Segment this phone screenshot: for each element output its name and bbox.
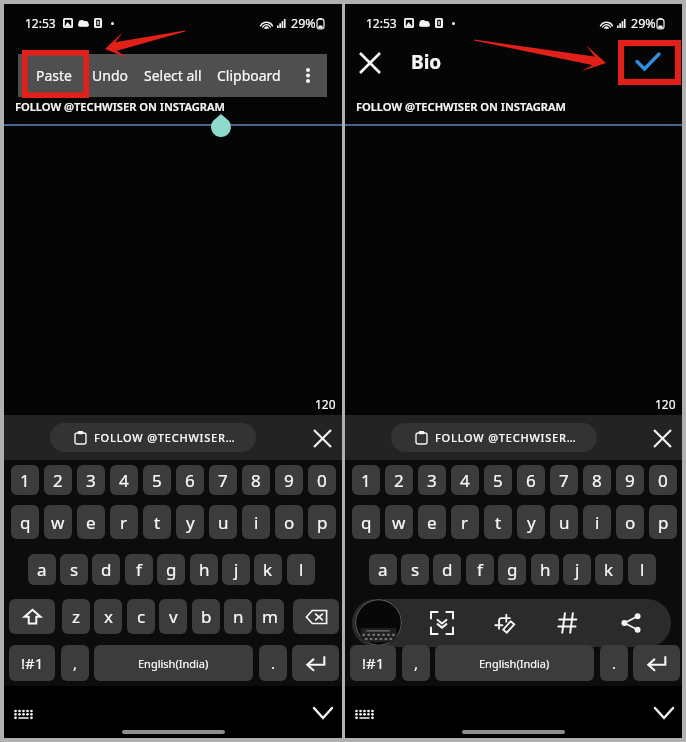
button[interactable]: d	[433, 554, 461, 585]
button[interactable]: 5	[484, 465, 512, 495]
button[interactable]: s	[60, 554, 88, 585]
button[interactable]: n	[224, 599, 252, 634]
button[interactable]: .	[259, 645, 287, 681]
button[interactable]: 5	[143, 465, 171, 495]
button[interactable]: l	[287, 554, 315, 585]
staticText: b	[201, 605, 212, 628]
button[interactable]: z	[62, 599, 90, 634]
button[interactable]: Paste	[18, 54, 89, 97]
button[interactable]: 1	[352, 465, 380, 495]
button[interactable]: o	[616, 505, 644, 539]
button[interactable]: s	[401, 554, 429, 585]
button[interactable]: 6	[176, 465, 204, 495]
button[interactable]: y	[517, 505, 545, 539]
button[interactable]: v	[159, 599, 187, 634]
button[interactable]: u	[550, 505, 578, 539]
button[interactable]: t	[484, 505, 512, 539]
button[interactable]: x	[94, 599, 122, 634]
button[interactable]: 7	[550, 465, 578, 495]
button[interactable]: 6	[517, 465, 545, 495]
button[interactable]: h	[190, 554, 218, 585]
button[interactable]: k	[595, 554, 623, 585]
button[interactable]: b	[192, 599, 220, 634]
button[interactable]: Close	[352, 45, 388, 81]
button[interactable]: o	[275, 505, 303, 539]
button[interactable]: .	[600, 645, 628, 681]
button[interactable]: Shift	[9, 599, 55, 634]
button[interactable]: !#1	[350, 645, 396, 681]
button[interactable]: d	[92, 554, 120, 585]
button[interactable]: f	[466, 554, 494, 585]
staticText: !#1	[21, 653, 44, 673]
button[interactable]: Close suggestion	[307, 423, 337, 453]
staticText: l	[299, 558, 304, 581]
button[interactable]: 8	[583, 465, 611, 495]
button[interactable]: 4	[451, 465, 479, 495]
button[interactable]: Undo	[84, 54, 136, 97]
button[interactable]: e	[418, 505, 446, 539]
button[interactable]: q	[352, 505, 380, 539]
button[interactable]: l	[628, 554, 656, 585]
button[interactable]: 2	[385, 465, 413, 495]
button[interactable]: k	[254, 554, 282, 585]
button[interactable]: !#1	[9, 645, 55, 681]
button[interactable]: Hide keyboard	[648, 697, 680, 729]
button[interactable]: f	[125, 554, 153, 585]
button[interactable]: p	[649, 505, 677, 539]
button[interactable]: FOLLOW @TECHWISER…	[391, 423, 597, 452]
button[interactable]: 9	[616, 465, 644, 495]
button[interactable]: g	[157, 554, 185, 585]
button[interactable]: w	[44, 505, 72, 539]
button[interactable]: Recent sticker	[355, 599, 402, 646]
button[interactable]: Enter	[633, 645, 680, 681]
button[interactable]: 1	[11, 465, 39, 495]
button[interactable]: j	[222, 554, 250, 585]
button[interactable]: y	[176, 505, 204, 539]
button[interactable]: Clipboard	[213, 54, 285, 97]
button[interactable]: 3	[77, 465, 105, 495]
button[interactable]: i	[583, 505, 611, 539]
button[interactable]: e	[77, 505, 105, 539]
button[interactable]: FOLLOW @TECHWISER…	[50, 423, 256, 452]
button[interactable]: ,	[61, 645, 89, 681]
button[interactable]: Backspace	[293, 599, 339, 634]
button[interactable]: ,	[402, 645, 430, 681]
button[interactable]: 9	[275, 465, 303, 495]
button[interactable]: w	[385, 505, 413, 539]
button[interactable]: Create sticker	[483, 599, 527, 647]
button[interactable]: i	[242, 505, 270, 539]
button[interactable]: Scan text	[420, 599, 464, 647]
button[interactable]: m	[256, 599, 284, 634]
button[interactable]: 8	[242, 465, 270, 495]
button[interactable]: 3	[418, 465, 446, 495]
button[interactable]: a	[369, 554, 397, 585]
button[interactable]: j	[563, 554, 591, 585]
button[interactable]: 0	[308, 465, 336, 495]
button[interactable]: r	[110, 505, 138, 539]
button[interactable]: English(India)	[435, 645, 594, 681]
button[interactable]: a	[28, 554, 56, 585]
button[interactable]: Hide keyboard	[307, 697, 339, 729]
button[interactable]: Keyboard layout	[348, 698, 380, 730]
button[interactable]: 2	[44, 465, 72, 495]
button[interactable]: Select all	[137, 54, 208, 97]
button[interactable]: More options	[288, 54, 327, 97]
button[interactable]: c	[127, 599, 155, 634]
button[interactable]: Share	[609, 599, 653, 647]
button[interactable]: Keyboard layout	[7, 698, 39, 730]
button[interactable]: r	[451, 505, 479, 539]
button[interactable]: Hashtag	[546, 599, 590, 647]
button[interactable]: t	[143, 505, 171, 539]
button[interactable]: Close suggestion	[647, 423, 677, 453]
button[interactable]: Done	[630, 43, 666, 79]
button[interactable]: p	[308, 505, 336, 539]
button[interactable]: h	[531, 554, 559, 585]
button[interactable]: u	[209, 505, 237, 539]
button[interactable]: g	[498, 554, 526, 585]
button[interactable]: 4	[110, 465, 138, 495]
button[interactable]: q	[11, 505, 39, 539]
button[interactable]: 7	[209, 465, 237, 495]
button[interactable]: Enter	[292, 645, 339, 681]
button[interactable]: 0	[649, 465, 677, 495]
button[interactable]: English(India)	[94, 645, 253, 681]
